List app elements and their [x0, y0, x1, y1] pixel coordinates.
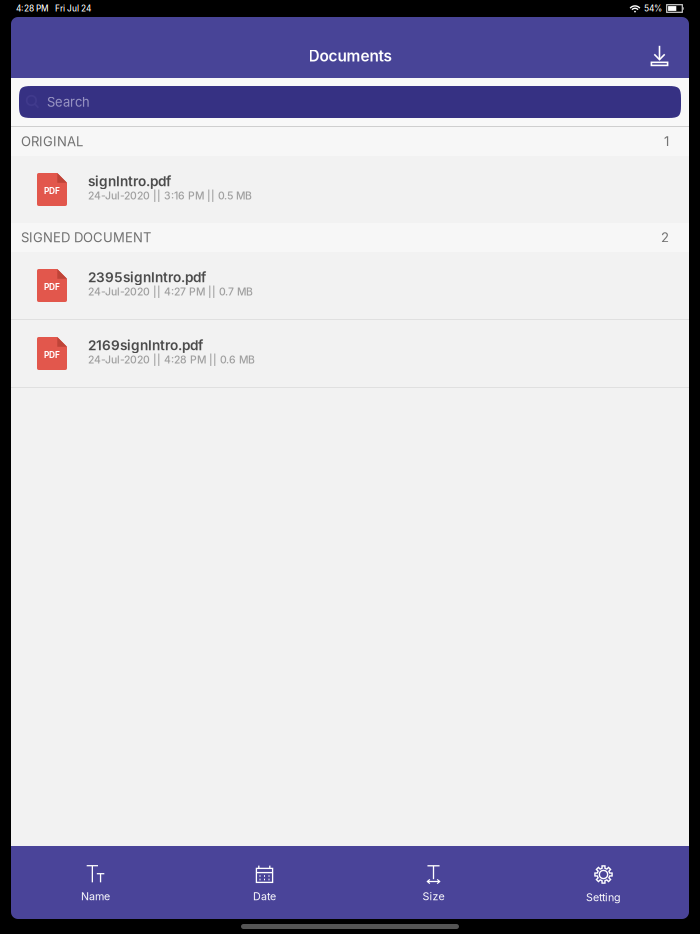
button[interactable]: PDF	[11, 252, 689, 319]
staticText: 2	[661, 230, 669, 245]
staticText: 1	[664, 134, 669, 149]
staticText: PDF	[44, 282, 60, 292]
staticText: ORIGINAL	[21, 134, 83, 149]
button[interactable]: PDF	[11, 320, 689, 387]
staticText: 2395signIntro.pdf	[88, 269, 206, 285]
staticText: Name	[81, 890, 110, 903]
button[interactable]: Download	[637, 41, 689, 70]
staticText: Fri Jul 24	[55, 3, 91, 13]
button[interactable]: PDF	[11, 156, 689, 223]
staticText: PDF	[44, 186, 60, 196]
staticText: SIGNED DOCUMENT	[21, 230, 151, 245]
button[interactable]: Date	[180, 846, 349, 919]
staticText: Documents	[308, 47, 391, 65]
button[interactable]: Size	[349, 846, 518, 919]
staticText: Search	[47, 94, 90, 110]
staticText: 2169signIntro.pdf	[88, 337, 203, 353]
staticText: 4:28 PM	[16, 3, 49, 13]
staticText: PDF	[44, 350, 60, 360]
staticText: signIntro.pdf	[88, 173, 171, 189]
staticText: Size	[422, 890, 444, 903]
staticText: 24-Jul-2020 || 3:16 PM || 0.5 MB	[88, 189, 252, 202]
staticText: Setting	[586, 891, 621, 904]
button[interactable]: Setting	[518, 846, 689, 919]
staticText: 24-Jul-2020 || 4:28 PM || 0.6 MB	[88, 353, 255, 366]
staticText: 54%	[644, 3, 662, 13]
button[interactable]: Search	[11, 86, 689, 118]
staticText: 24-Jul-2020 || 4:27 PM || 0.7 MB	[88, 285, 253, 298]
button[interactable]: Name	[11, 846, 180, 919]
staticText: Date	[253, 890, 276, 903]
